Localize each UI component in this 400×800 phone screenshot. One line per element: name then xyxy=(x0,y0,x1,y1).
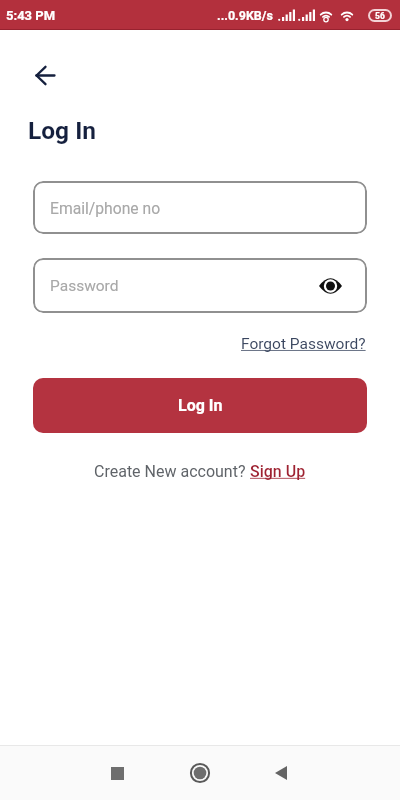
button[interactable] xyxy=(93,746,141,800)
button[interactable] xyxy=(257,746,305,800)
staticText: Log In xyxy=(28,116,97,145)
button[interactable] xyxy=(23,53,67,97)
button[interactable]: Password xyxy=(33,258,367,313)
button[interactable] xyxy=(176,746,224,800)
staticText: ...0.9KB/s xyxy=(217,8,273,23)
staticText: Create New account? xyxy=(94,462,250,481)
staticText: 5:43 PM xyxy=(6,8,56,23)
staticText: Password xyxy=(50,277,119,295)
button[interactable] xyxy=(314,270,346,302)
button[interactable]: Email/phone no xyxy=(33,181,367,234)
staticText: 56 xyxy=(375,11,385,21)
button[interactable]: Forgot Password? xyxy=(241,335,366,353)
staticText: Email/phone no xyxy=(50,199,161,217)
button[interactable]: Sign Up xyxy=(250,462,306,481)
button[interactable]: Log In xyxy=(33,378,367,433)
staticText: Log In xyxy=(178,396,223,415)
